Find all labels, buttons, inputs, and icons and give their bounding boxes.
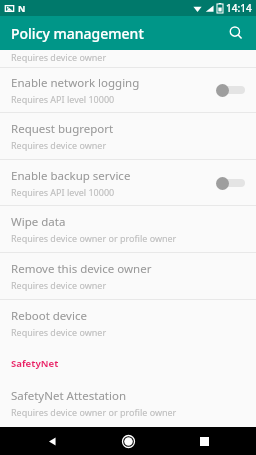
staticText: Requires API level 10000: [11, 93, 115, 105]
staticText: Enable network logging: [11, 75, 140, 91]
staticText: Reboot device: [11, 308, 87, 324]
staticText: Requires device owner: [11, 139, 107, 151]
staticText: 14:14: [226, 1, 252, 15]
button[interactable]: Back: [40, 429, 64, 453]
button[interactable]: Toggle Enable backup service: [214, 172, 248, 194]
button[interactable]: SafetyNet Attestation: [0, 381, 256, 425]
staticText: Requires device owner or profile owner: [11, 232, 177, 244]
staticText: Wipe data: [11, 214, 66, 230]
staticText: SafetyNet Attestation: [11, 388, 127, 404]
staticText: Requires device owner or profile owner: [11, 406, 177, 418]
staticText: Remove this device owner: [11, 261, 152, 277]
staticText: Requires device owner: [11, 326, 107, 338]
button[interactable]: Home: [116, 429, 140, 453]
button[interactable]: Reboot device: [0, 300, 256, 346]
button[interactable]: Request bugreport: [0, 113, 256, 159]
button[interactable]: Search: [222, 19, 250, 47]
staticText: N: [18, 2, 26, 14]
staticText: Request bugreport: [11, 121, 114, 137]
button[interactable]: Remove this device owner: [0, 253, 256, 299]
button[interactable]: Recent apps: [192, 429, 216, 453]
staticText: SafetyNet: [11, 357, 59, 370]
button[interactable]: Toggle Enable network logging: [214, 79, 248, 101]
staticText: Requires API level 10000: [11, 186, 115, 198]
button[interactable]: Enable network logging: [0, 68, 256, 112]
staticText: Requires device owner: [11, 279, 107, 291]
button[interactable]: Enable backup service: [0, 160, 256, 205]
staticText: Policy management: [11, 24, 144, 43]
button[interactable]: Wipe data: [0, 206, 256, 252]
staticText: Requires device owner: [11, 51, 107, 63]
staticText: Enable backup service: [11, 168, 131, 184]
